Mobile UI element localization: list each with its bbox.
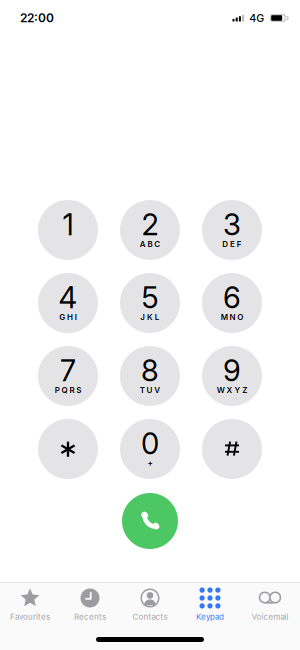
staticText: 9 [223,353,241,388]
button[interactable]: 4 [38,273,98,333]
button[interactable]: 8 [120,346,180,406]
staticText: 4 [58,280,77,315]
button[interactable]: Keypad [180,583,240,624]
button[interactable]: Favourites [0,583,60,624]
staticText: 7 [60,353,76,388]
button[interactable]: Contacts [120,583,180,624]
button[interactable]: 7 [38,346,98,406]
button[interactable]: 6 [202,273,262,333]
button[interactable]: 2 [120,200,180,260]
staticText: Voicemail [251,612,288,621]
staticText: MNO [221,312,243,322]
staticText: ABC [140,239,160,249]
staticText: 22:00 [20,11,54,25]
staticText: 4G [249,12,264,24]
staticText: TUV [140,385,160,395]
staticText: Recents [74,612,106,621]
button[interactable]: Recents [60,583,120,624]
staticText: Favourites [10,612,50,621]
button[interactable]: 5 [120,273,180,333]
staticText: 1 [62,207,73,242]
staticText: Keypad [196,612,224,621]
button[interactable]: 3 [202,200,262,260]
button[interactable]: Star [38,419,98,479]
staticText: DEF [222,239,242,249]
staticText: 6 [223,280,241,315]
button[interactable]: Call [122,493,178,549]
staticText: 8 [141,353,159,388]
button[interactable]: 9 [202,346,262,406]
staticText: 5 [141,280,158,315]
staticText: JKL [140,312,160,322]
staticText: 3 [223,207,241,242]
button[interactable]: Pound [202,419,262,479]
staticText: + [147,458,152,468]
button[interactable]: Voicemail [240,583,300,624]
staticText: 2 [141,207,158,242]
button[interactable]: 1 [38,200,98,260]
staticText: PQRS [55,385,81,395]
button[interactable]: 0 [120,419,180,479]
staticText: 0 [141,426,159,461]
staticText: Contacts [132,612,167,621]
staticText: GHI [59,312,77,322]
staticText: WXYZ [217,385,247,395]
